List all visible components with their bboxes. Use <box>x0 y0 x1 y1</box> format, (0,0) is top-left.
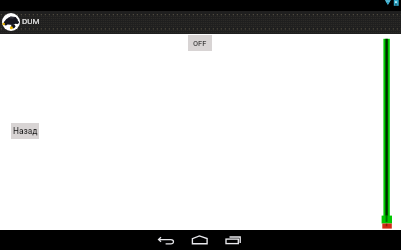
staticText: OFF <box>193 39 207 48</box>
button[interactable]: Recents <box>216 230 248 250</box>
button[interactable]: Back <box>150 230 184 250</box>
staticText: Назад <box>13 126 38 136</box>
button[interactable]: Vertical slider <box>379 38 395 230</box>
button[interactable]: Home <box>184 230 216 250</box>
button[interactable]: App icon <box>2 13 20 31</box>
staticText: DUM <box>22 17 40 26</box>
button[interactable]: Назад <box>11 123 39 139</box>
button[interactable]: OFF <box>188 35 212 51</box>
